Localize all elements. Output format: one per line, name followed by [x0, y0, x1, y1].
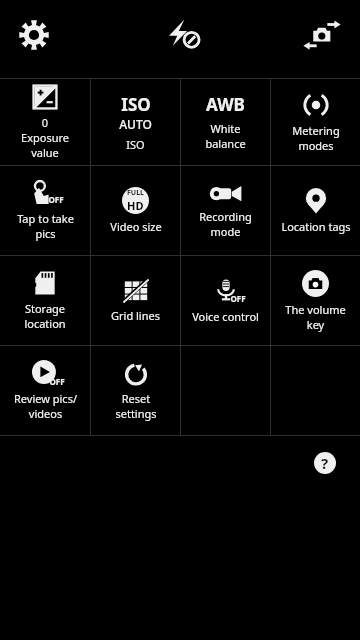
- staticText: ?: [321, 453, 329, 473]
- button[interactable]: Storage location: [0, 256, 90, 345]
- staticText: Tap to take pics: [17, 211, 74, 241]
- staticText: ISO: [121, 93, 151, 116]
- staticText: OFF: [49, 376, 65, 387]
- button[interactable]: Settings: [12, 13, 56, 57]
- button[interactable]: OFF: [181, 256, 270, 345]
- button[interactable]: Switch camera: [298, 13, 346, 57]
- staticText: FULL: [127, 188, 144, 198]
- staticText: HD: [127, 198, 144, 213]
- staticText: Grid lines: [111, 308, 160, 323]
- staticText: Video size: [110, 219, 162, 234]
- button[interactable]: ISO: [91, 79, 180, 165]
- staticText: Reset settings: [115, 391, 157, 421]
- button[interactable]: OFF: [0, 346, 90, 435]
- staticText: OFF: [230, 293, 246, 304]
- staticText: AUTO: [119, 116, 152, 132]
- staticText: ISO: [126, 137, 145, 152]
- button[interactable]: Reset settings: [91, 346, 180, 435]
- staticText: Review pics/ videos: [14, 391, 77, 421]
- staticText: The volume key: [285, 302, 346, 332]
- staticText: Location tags: [281, 219, 351, 234]
- button[interactable]: Recording mode: [181, 166, 270, 255]
- staticText: Recording mode: [199, 209, 252, 239]
- button[interactable]: The volume key: [271, 256, 360, 345]
- button[interactable]: AWB: [181, 79, 270, 165]
- button[interactable]: 0 Exposure value: [0, 79, 90, 165]
- button[interactable]: Location tags: [271, 166, 360, 255]
- staticText: Storage location: [24, 301, 66, 331]
- staticText: White balance: [205, 121, 246, 151]
- button[interactable]: Grid lines: [91, 256, 180, 345]
- staticText: OFF: [48, 194, 64, 205]
- staticText: Voice control: [192, 309, 259, 324]
- staticText: 0 Exposure value: [21, 115, 69, 160]
- button[interactable]: OFF: [0, 166, 90, 255]
- button[interactable]: Metering modes: [271, 79, 360, 165]
- button[interactable]: Flash off: [156, 13, 212, 57]
- button[interactable]: FULL: [91, 166, 180, 255]
- button[interactable]: Help: [308, 446, 342, 480]
- staticText: Metering modes: [292, 123, 340, 153]
- staticText: AWB: [206, 93, 245, 116]
